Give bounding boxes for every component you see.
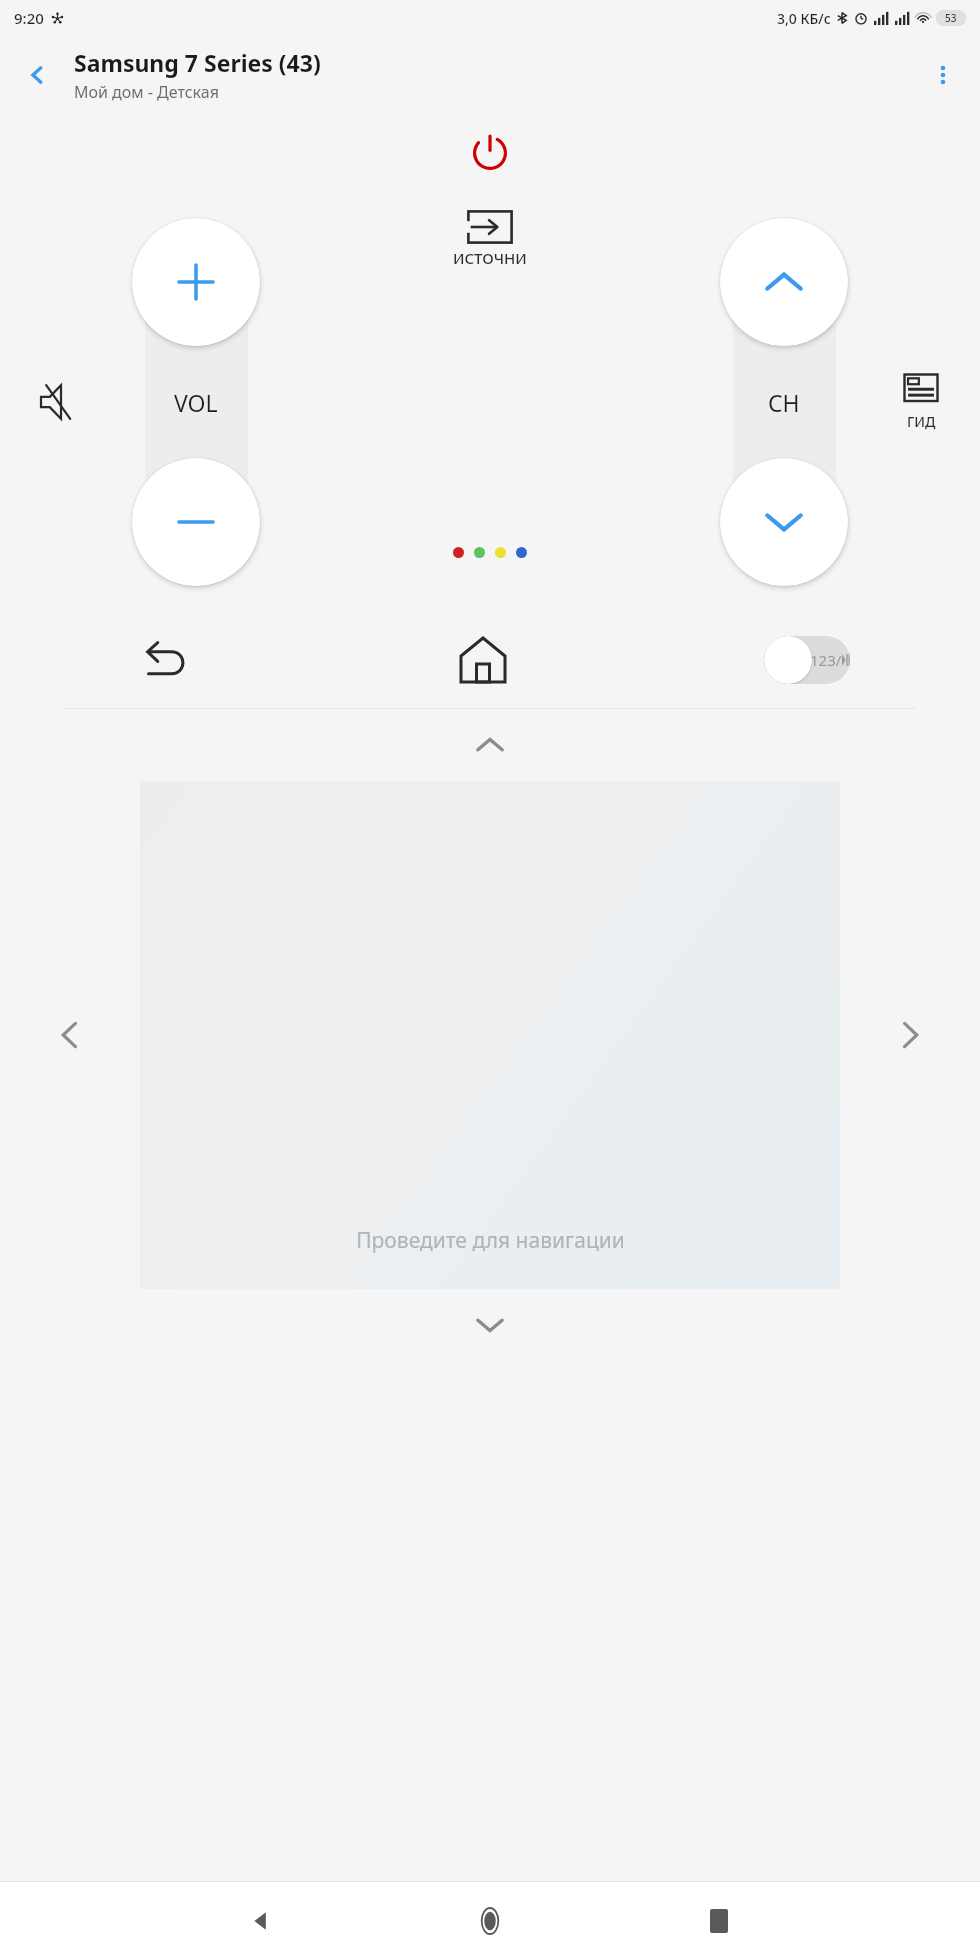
button[interactable]: More options [906,36,980,114]
button[interactable]: Touchpad [140,781,840,1289]
button[interactable] [495,547,506,558]
staticText: CH [768,387,800,418]
button[interactable]: Power [462,125,518,181]
button[interactable]: ГИД [880,373,962,431]
button[interactable]: Recents [691,1893,747,1949]
staticText: 3,0 КБ/c [777,9,831,28]
staticText: ГИД [907,412,936,431]
button[interactable]: Channel down [720,458,848,586]
button[interactable] [453,547,464,558]
button[interactable]: Home [445,622,521,698]
button[interactable]: Expand [0,1289,980,1361]
button[interactable]: ИСТОЧНИ [453,210,527,268]
button[interactable]: Left [0,781,140,1289]
button[interactable]: Back [233,1893,289,1949]
button[interactable]: Volume up [132,218,260,346]
button[interactable] [474,547,485,558]
staticText: VOL [174,387,218,418]
staticText: Проведите для навигации [356,1226,625,1255]
button[interactable] [516,547,527,558]
button[interactable]: Home [462,1893,518,1949]
button[interactable]: Volume down [132,458,260,586]
staticText: Samsung 7 Series (43) [74,47,321,78]
button[interactable]: Channel up [720,218,848,346]
button[interactable]: Back [0,36,74,114]
staticText: Мой дом - Детская [74,81,219,103]
button[interactable]: Back [130,624,202,696]
button[interactable]: Mute [22,365,96,439]
staticText: ИСТОЧНИ [453,248,527,268]
button[interactable]: Right [840,781,980,1289]
button[interactable]: Collapse [0,709,980,781]
staticText: 53 [945,11,957,25]
staticText: 123/ [810,650,842,670]
staticText: 9:20 [14,8,44,28]
button[interactable]: Numeric keypad / playback toggle [764,636,850,684]
